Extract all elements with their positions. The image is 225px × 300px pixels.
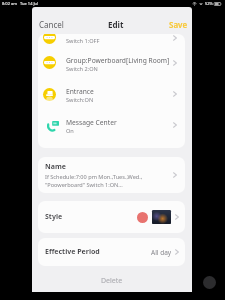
staticText: Effective Period <box>45 247 100 257</box>
button[interactable]: Effective Period <box>38 238 185 266</box>
staticText: Edit <box>108 19 124 30</box>
staticText: Delete <box>101 276 123 286</box>
staticText: On <box>66 127 74 135</box>
button[interactable]: Name <box>38 157 185 193</box>
staticText: Cancel <box>39 19 64 30</box>
staticText: 52% <box>205 1 213 6</box>
staticText: Name <box>45 162 66 172</box>
button[interactable]: Cancel <box>37 16 66 33</box>
staticText: Message Center <box>66 118 117 127</box>
staticText: Group:Powerboard[Living Room] <box>66 56 170 65</box>
staticText: Entrance <box>66 87 94 96</box>
button[interactable]: Group:Powerboard[Living Room] <box>38 47 185 78</box>
button[interactable]: Delete <box>38 272 185 290</box>
staticText: Save <box>169 19 188 30</box>
button[interactable]: Switch 1:OFF <box>38 34 185 53</box>
staticText: Switch 1:OFF <box>66 37 100 45</box>
button[interactable]: Save <box>167 16 190 33</box>
staticText: Switch 2:ON <box>66 65 98 73</box>
staticText: All day <box>151 248 172 257</box>
staticText: Switch:ON <box>66 96 94 104</box>
staticText: If Schedule:7:00 pm Mon.,Tues.,Wed., <box>45 173 143 181</box>
staticText: "Poowerboard" Switch 1:ON... <box>45 181 123 189</box>
staticText: Style <box>45 212 63 222</box>
button[interactable]: Style <box>38 201 185 233</box>
staticText: 8:02 am Tue 14 Jul <box>2 1 39 6</box>
button[interactable]: Entrance <box>38 78 185 109</box>
button[interactable]: Message Center <box>38 109 185 140</box>
